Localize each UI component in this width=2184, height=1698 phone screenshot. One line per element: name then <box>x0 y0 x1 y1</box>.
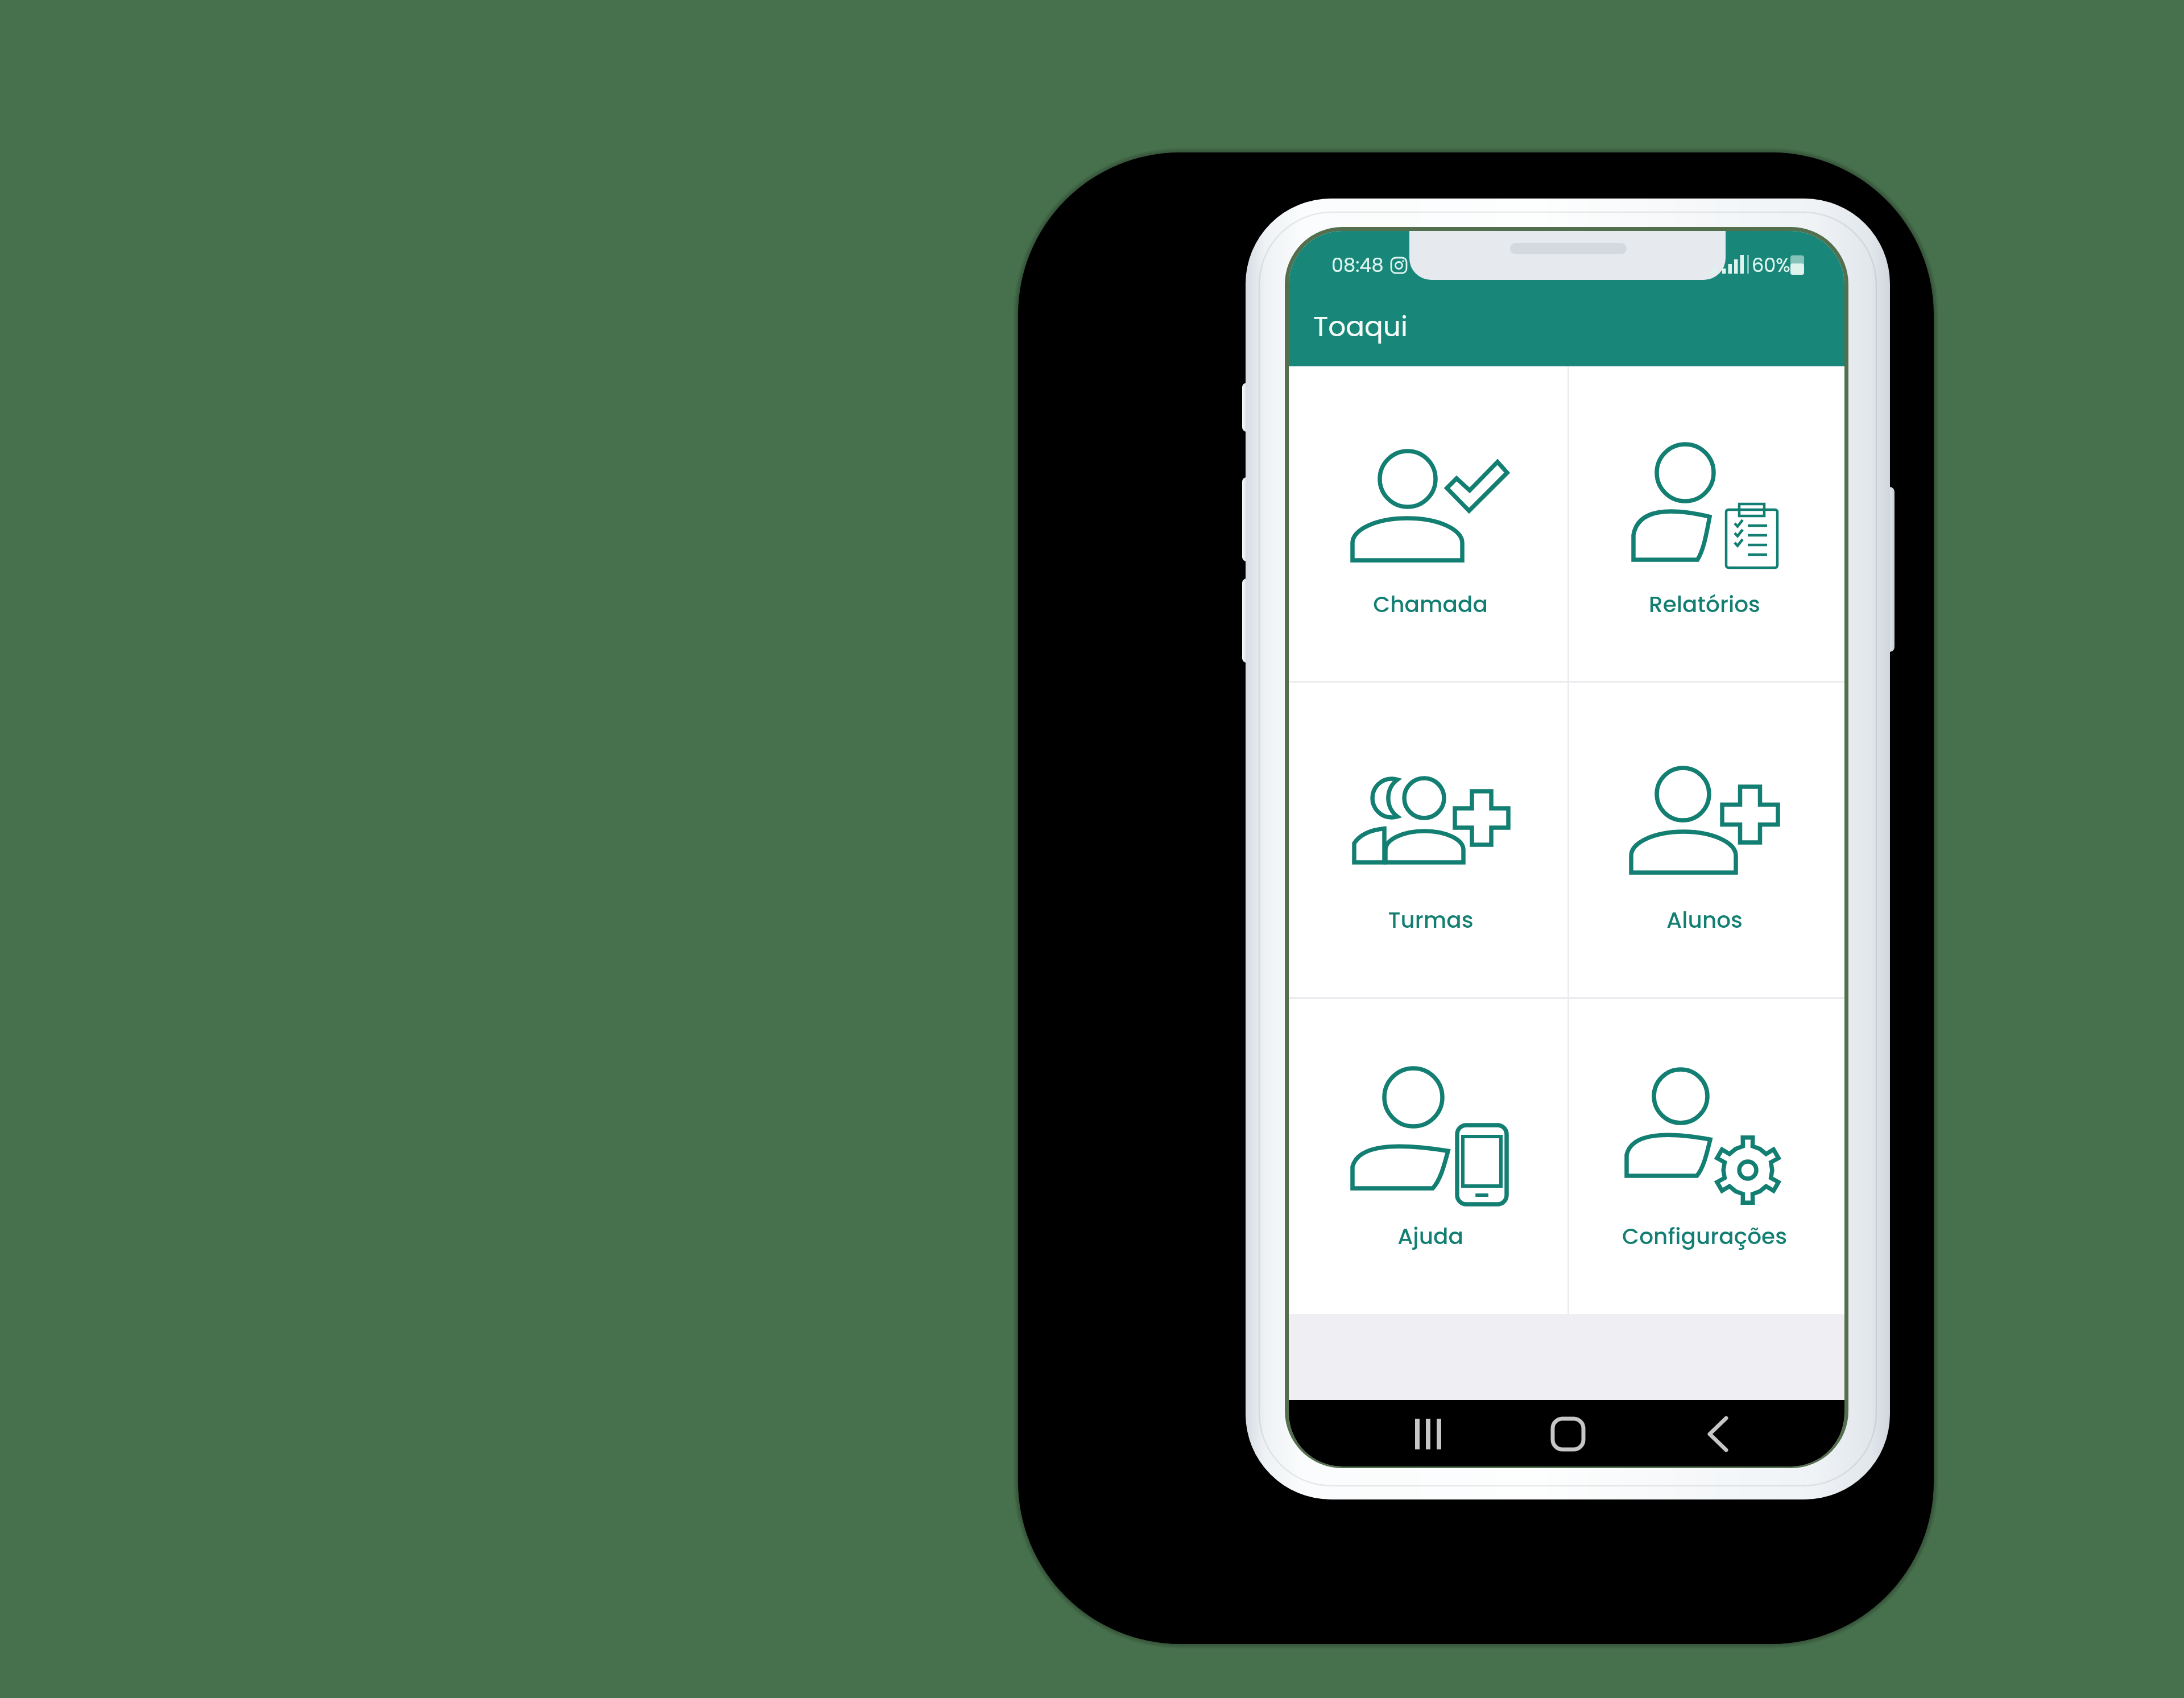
button[interactable]: Alunos <box>1567 683 1844 997</box>
button[interactable]: Home <box>1538 1414 1590 1455</box>
staticText: Configurações <box>1622 1221 1787 1252</box>
staticText: Ajuda <box>1397 1221 1463 1252</box>
button[interactable]: Chamada <box>1289 367 1567 681</box>
staticText: Toaqui <box>1313 307 1408 346</box>
button[interactable]: Recent apps <box>1399 1414 1450 1455</box>
button[interactable]: Configurações <box>1567 999 1844 1313</box>
staticText: Turmas <box>1388 904 1474 936</box>
staticText: Chamada <box>1373 589 1488 620</box>
button[interactable]: Turmas <box>1289 683 1567 997</box>
staticText: Relatórios <box>1649 589 1760 620</box>
button[interactable]: Back <box>1692 1414 1743 1455</box>
staticText: Alunos <box>1666 904 1743 936</box>
button[interactable]: Ajuda <box>1289 999 1567 1313</box>
staticText: 08:48 <box>1331 252 1384 279</box>
button[interactable]: Relatórios <box>1567 367 1844 681</box>
staticText: 60% <box>1752 252 1790 279</box>
